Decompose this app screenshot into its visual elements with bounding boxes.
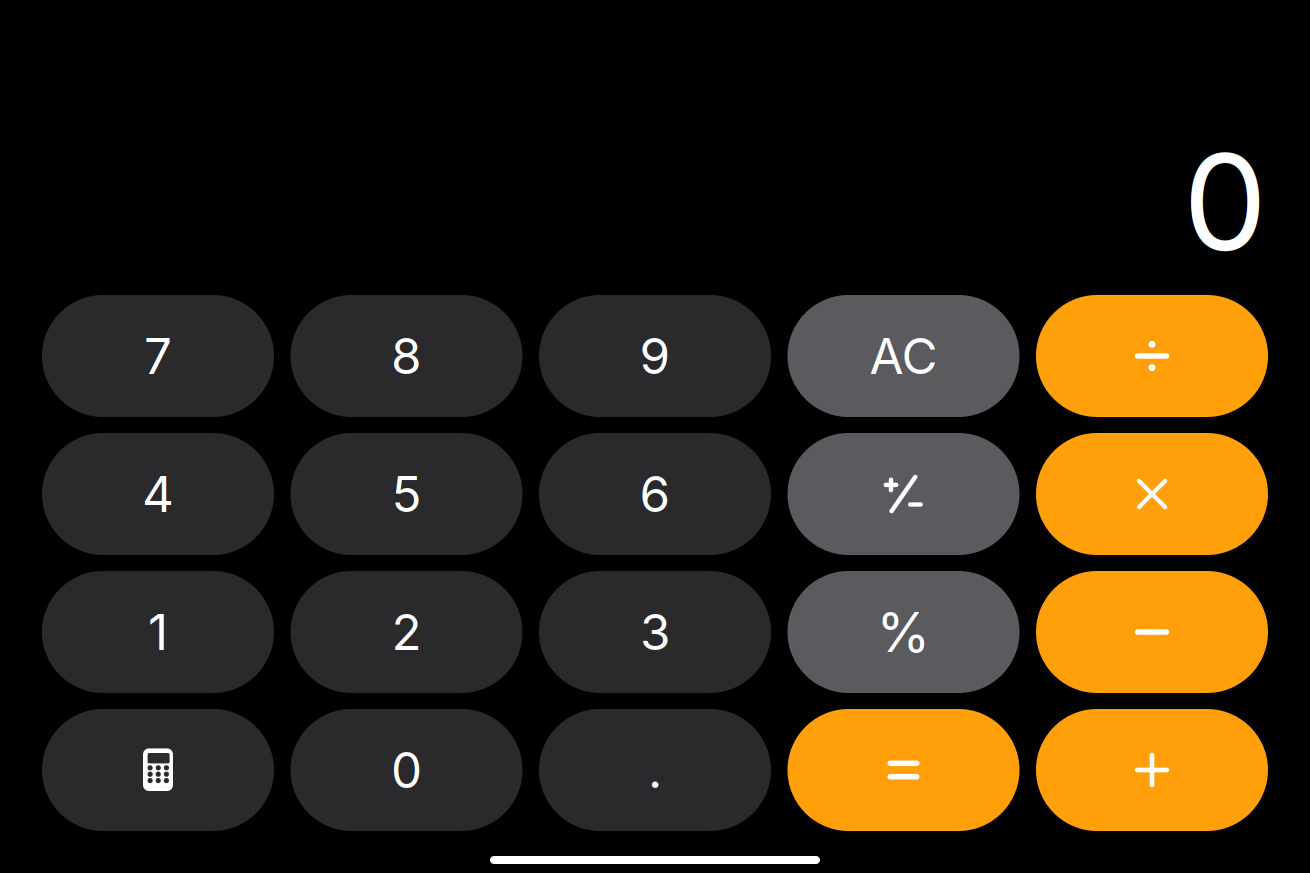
button[interactable]: Divide bbox=[1036, 295, 1268, 417]
button[interactable]: 5 bbox=[290, 433, 522, 555]
staticText: 6 bbox=[639, 464, 670, 524]
staticText: 5 bbox=[391, 464, 421, 524]
button[interactable]: 3 bbox=[539, 571, 771, 693]
button[interactable]: 7 bbox=[42, 295, 274, 417]
button[interactable]: Add bbox=[1036, 709, 1268, 831]
button[interactable]: 9 bbox=[539, 295, 771, 417]
button[interactable]: 4 bbox=[42, 433, 274, 555]
staticText: AC bbox=[869, 326, 937, 386]
button[interactable]: Multiply bbox=[1036, 433, 1268, 555]
staticText: 4 bbox=[142, 464, 174, 524]
staticText: 3 bbox=[640, 602, 670, 662]
button[interactable]: All clear bbox=[787, 295, 1019, 417]
staticText: 0 bbox=[391, 740, 422, 800]
staticText: 0 bbox=[1183, 121, 1267, 282]
button[interactable]: Percent bbox=[787, 571, 1019, 693]
staticText: 9 bbox=[639, 326, 670, 386]
button[interactable]: Equals bbox=[787, 709, 1019, 831]
button[interactable]: 8 bbox=[290, 295, 522, 417]
button[interactable]: Decimal point bbox=[539, 709, 771, 831]
staticText: 2 bbox=[391, 602, 421, 662]
staticText: % bbox=[876, 599, 930, 665]
staticText: . bbox=[648, 740, 662, 800]
staticText: 1 bbox=[148, 602, 168, 662]
button[interactable]: 6 bbox=[539, 433, 771, 555]
button[interactable]: Calculator bbox=[42, 709, 274, 831]
button[interactable]: 0 bbox=[290, 709, 522, 831]
staticText: 8 bbox=[391, 326, 422, 386]
button[interactable]: Plus or minus bbox=[787, 433, 1019, 555]
button[interactable]: Subtract bbox=[1036, 571, 1268, 693]
button[interactable]: 2 bbox=[290, 571, 522, 693]
button[interactable]: 1 bbox=[42, 571, 274, 693]
staticText: 7 bbox=[144, 326, 172, 386]
